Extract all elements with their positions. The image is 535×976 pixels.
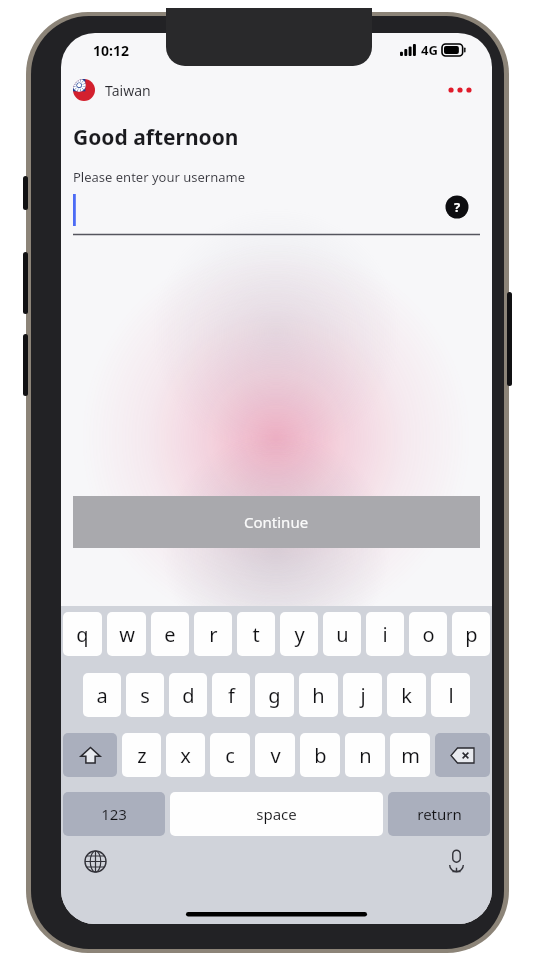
staticText: Taiwan — [105, 81, 151, 100]
staticText: s — [140, 682, 150, 709]
staticText: m — [401, 742, 420, 769]
staticText: return — [417, 804, 462, 824]
staticText: b — [314, 742, 327, 769]
staticText: g — [268, 682, 281, 709]
button[interactable]: m — [390, 733, 430, 777]
button[interactable]: o — [409, 612, 447, 656]
button[interactable]: Taiwan — [71, 75, 153, 105]
button[interactable]: v — [255, 733, 295, 777]
button[interactable]: p — [452, 612, 490, 656]
staticText: k — [401, 682, 412, 709]
staticText: r — [209, 621, 218, 648]
staticText: w — [119, 621, 135, 648]
staticText: Please enter your username — [73, 168, 245, 186]
button[interactable]: s — [126, 673, 164, 717]
staticText: ? — [454, 198, 461, 216]
button[interactable]: k — [387, 673, 426, 717]
button[interactable]: a — [83, 673, 121, 717]
staticText: z — [137, 742, 147, 769]
staticText: x — [180, 742, 191, 769]
button[interactable]: j — [343, 673, 382, 717]
staticText: Continue — [244, 512, 309, 532]
button[interactable]: r — [194, 612, 232, 656]
staticText: h — [312, 682, 325, 709]
staticText: i — [382, 621, 388, 648]
staticText: p — [465, 621, 478, 648]
staticText: e — [164, 621, 176, 648]
staticText: Good afternoon — [73, 123, 239, 152]
staticText: l — [448, 682, 454, 709]
staticText: 123 — [101, 804, 127, 824]
button[interactable]: n — [345, 733, 385, 777]
button[interactable]: g — [255, 673, 294, 717]
staticText: 10:12 — [93, 41, 129, 60]
button[interactable]: return — [388, 792, 490, 836]
staticText: space — [256, 804, 297, 824]
staticText: u — [336, 621, 349, 648]
button[interactable]: 123 — [63, 792, 165, 836]
button[interactable]: w — [107, 612, 146, 656]
staticText: t — [252, 621, 260, 648]
staticText: q — [76, 621, 89, 648]
staticText: o — [422, 621, 435, 648]
button[interactable]: Dictate — [439, 844, 473, 878]
button[interactable]: f — [212, 673, 250, 717]
staticText: j — [360, 682, 366, 709]
staticText: a — [96, 682, 108, 709]
staticText: f — [228, 682, 235, 709]
staticText: c — [225, 742, 235, 769]
button[interactable]: x — [166, 733, 205, 777]
button[interactable]: t — [237, 612, 275, 656]
button[interactable]: u — [323, 612, 361, 656]
button[interactable]: c — [210, 733, 250, 777]
button[interactable]: Backspace — [435, 733, 490, 777]
button[interactable]: i — [366, 612, 404, 656]
button[interactable]: space — [170, 792, 383, 836]
button[interactable]: Change keyboard language — [78, 844, 112, 878]
button[interactable]: b — [300, 733, 340, 777]
button[interactable]: q — [63, 612, 102, 656]
button[interactable]: Continue — [73, 496, 480, 548]
button[interactable]: Help — [444, 194, 470, 220]
button[interactable]: l — [431, 673, 470, 717]
button[interactable]: y — [280, 612, 318, 656]
staticText: d — [182, 682, 195, 709]
button[interactable]: e — [151, 612, 189, 656]
button[interactable]: Shift — [63, 733, 117, 777]
button[interactable]: d — [169, 673, 207, 717]
button[interactable]: z — [122, 733, 161, 777]
button[interactable]: h — [299, 673, 338, 717]
staticText: n — [359, 742, 372, 769]
staticText: 4G — [421, 41, 438, 59]
button[interactable]: More options — [442, 72, 478, 108]
staticText: v — [270, 742, 281, 769]
staticText: y — [294, 621, 305, 648]
